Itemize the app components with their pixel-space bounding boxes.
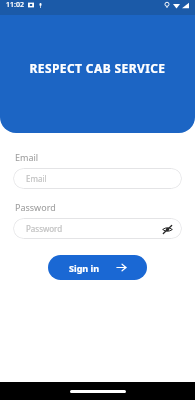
button[interactable]: Email: [13, 168, 182, 189]
staticText: RESPECT CAB SERVICE: [0, 60, 195, 76]
button[interactable]: Toggle password visibility: [160, 222, 174, 236]
staticText: 11:02: [6, 0, 24, 10]
staticText: Password: [26, 223, 63, 234]
button[interactable]: Password: [13, 218, 182, 239]
staticText: Email: [15, 151, 39, 163]
button[interactable]: Sign in: [48, 255, 147, 280]
staticText: Email: [26, 173, 47, 184]
staticText: Sign in: [69, 262, 100, 274]
staticText: Password: [15, 201, 56, 213]
